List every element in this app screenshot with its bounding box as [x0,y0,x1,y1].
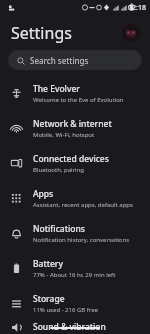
button[interactable]: Apps [0,181,150,216]
staticText: 77% - About 16 hr, 29 min left [33,271,116,279]
staticText: 11% used - 216 GB free [33,306,98,314]
staticText: Bluetooth, pairing [33,166,85,174]
staticText: The Evolver [33,83,80,95]
button[interactable]: Sound & vibration [0,321,150,334]
staticText: Storage [33,293,65,305]
staticText: Settings [11,22,72,44]
staticText: Notifications [33,223,85,235]
staticText: Connected devices [33,153,109,165]
staticText: Mobile, Wi-Fi, hotspot [33,131,95,139]
button[interactable]: Account avatar [122,24,140,42]
staticText: Assistant, recent apps, default apps [33,201,133,209]
button[interactable]: Search settings [8,50,142,70]
staticText: Network & internet [33,118,112,130]
button[interactable]: Battery [0,251,150,286]
button[interactable]: Storage [0,286,150,321]
staticText: 02:18 [128,3,146,13]
staticText: Search settings [30,55,89,66]
button[interactable]: Notifications [0,216,150,251]
staticText: Welcome to the Eve of Evolution [33,96,124,104]
staticText: Sound & vibration [33,321,106,333]
staticText: Battery [33,258,63,270]
staticText: Notification history, conversations [33,236,130,244]
button[interactable]: Connected devices [0,146,150,181]
staticText: Apps [33,188,54,200]
button[interactable]: Network & internet [0,111,150,146]
button[interactable]: The Evolver [0,76,150,111]
